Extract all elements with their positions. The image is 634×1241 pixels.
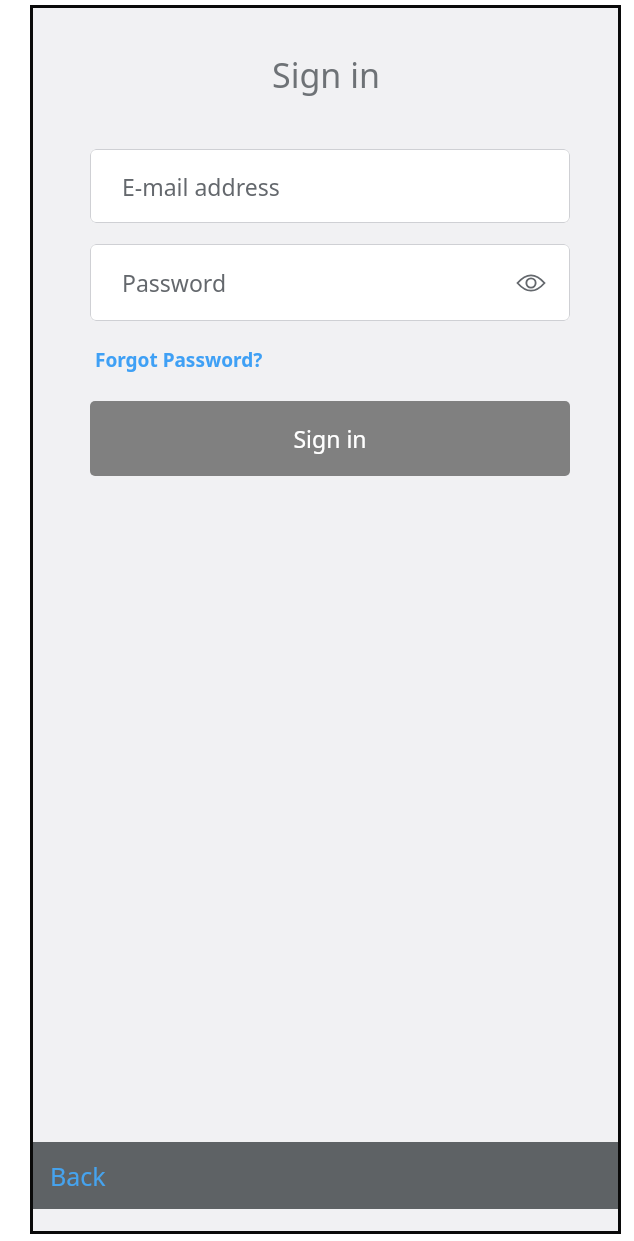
button[interactable]: Forgot Password? [95,345,263,375]
staticText: Back [50,1159,106,1193]
button[interactable]: Show password [514,266,548,300]
button[interactable]: Back [33,1142,618,1209]
staticText: Sign in [272,52,380,98]
staticText: Sign in [293,423,367,454]
staticText: Forgot Password? [95,347,263,373]
button[interactable]: E-mail address [90,149,570,223]
staticText: Password [122,267,514,298]
staticText: E-mail address [122,171,280,202]
button[interactable]: Sign in [90,401,570,476]
button[interactable]: Password [90,244,570,321]
